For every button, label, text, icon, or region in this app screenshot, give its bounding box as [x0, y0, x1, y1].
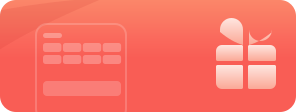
button[interactable]: Gift offer — [0, 0, 296, 112]
